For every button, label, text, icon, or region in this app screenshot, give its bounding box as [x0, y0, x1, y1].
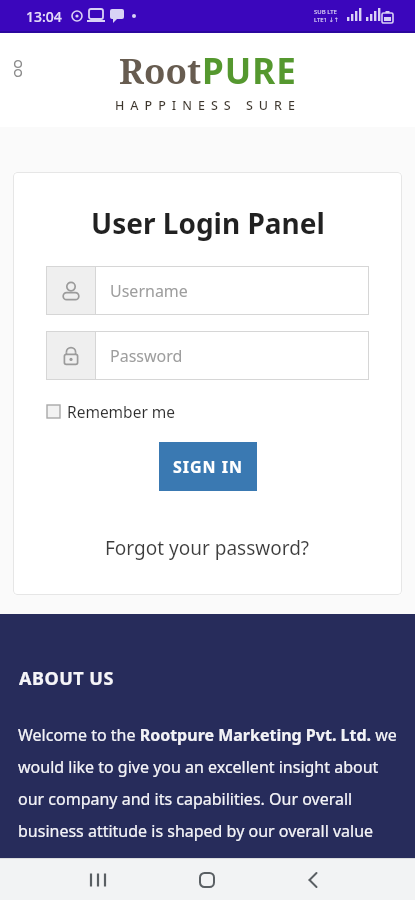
button[interactable]: Password [46, 331, 369, 380]
button[interactable]: Remember me [46, 400, 369, 422]
button[interactable]: Username [46, 266, 369, 315]
staticText: SIGN IN [173, 456, 244, 478]
staticText: would like to give you an excellent insi… [18, 756, 379, 778]
button[interactable] [78, 859, 118, 900]
button[interactable]: SIGN IN [159, 442, 257, 491]
staticText: LTE1 ↓↑ [314, 16, 339, 24]
staticText: Remember me [67, 401, 176, 422]
button[interactable]: Forgot your password? [105, 535, 310, 561]
staticText: 13:04 [26, 7, 62, 26]
staticText: PURE [202, 47, 297, 95]
staticText: business attitude is shaped by our overa… [18, 820, 374, 842]
staticText: our company and its capabilities. Our ov… [18, 788, 353, 810]
staticText: User Login Panel [91, 204, 325, 242]
staticText: Password [110, 345, 183, 367]
staticText: SUB LTE [314, 8, 337, 16]
staticText: HAPPINESS SURE [115, 97, 301, 114]
staticText: Welcome to the Rootpure Marketing Pvt. L… [18, 724, 397, 746]
button[interactable] [187, 859, 227, 900]
staticText: ABOUT US [19, 666, 114, 691]
button[interactable] [293, 859, 333, 900]
staticText: Root [119, 47, 202, 95]
staticText: Username [110, 280, 188, 302]
